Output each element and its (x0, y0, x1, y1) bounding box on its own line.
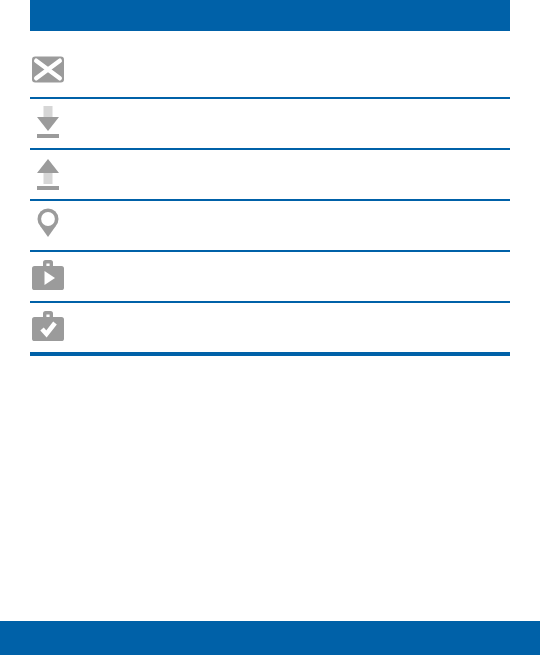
button[interactable]: Completed work (0, 303, 540, 352)
button[interactable]: Mail (0, 48, 540, 97)
button[interactable]: Download (0, 99, 540, 148)
button[interactable]: Location (0, 201, 540, 250)
button[interactable]: Upload (0, 150, 540, 199)
button[interactable]: Video work (0, 252, 540, 301)
